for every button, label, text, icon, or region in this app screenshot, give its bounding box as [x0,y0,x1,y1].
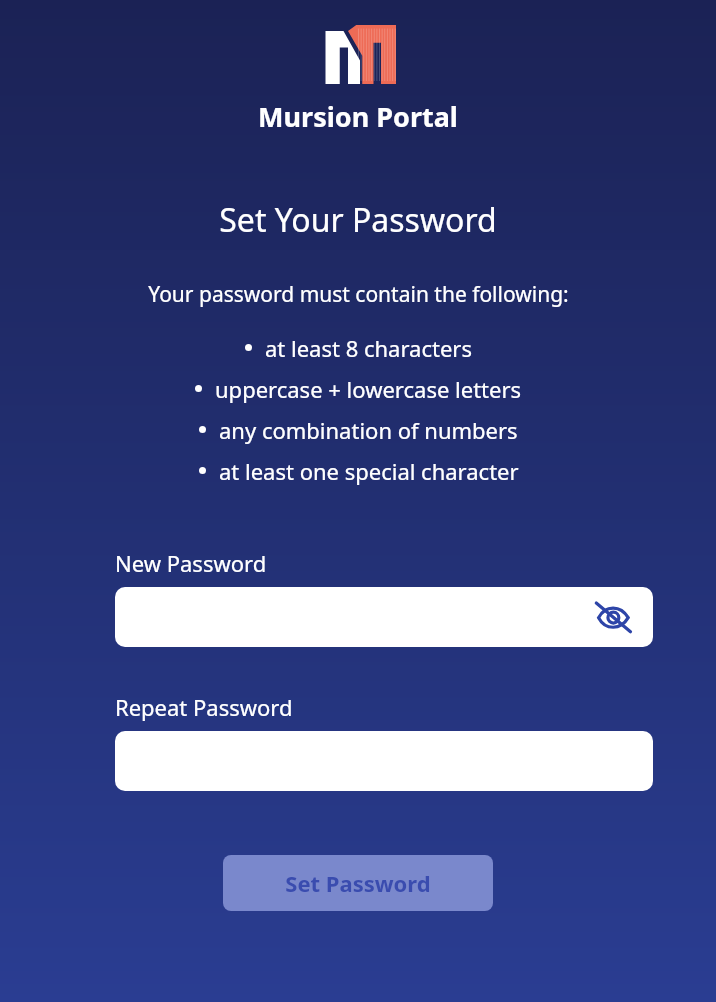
staticText: uppercase + lowercase letters [215,374,522,404]
button[interactable]: Set Password [223,855,493,911]
staticText: Mursion Portal [258,98,458,135]
staticText: at least one special character [219,456,519,486]
button[interactable] [115,731,653,791]
staticText: any combination of numbers [219,415,518,445]
button[interactable]: Show password [115,587,653,647]
staticText: Your password must contain the following… [148,280,569,309]
staticText: at least 8 characters [265,333,472,363]
staticText: Set Password [285,868,431,898]
button[interactable]: Show password [593,597,633,637]
staticText: Repeat Password [115,692,293,722]
staticText: New Password [115,548,267,578]
staticText: Set Your Password [219,198,497,242]
